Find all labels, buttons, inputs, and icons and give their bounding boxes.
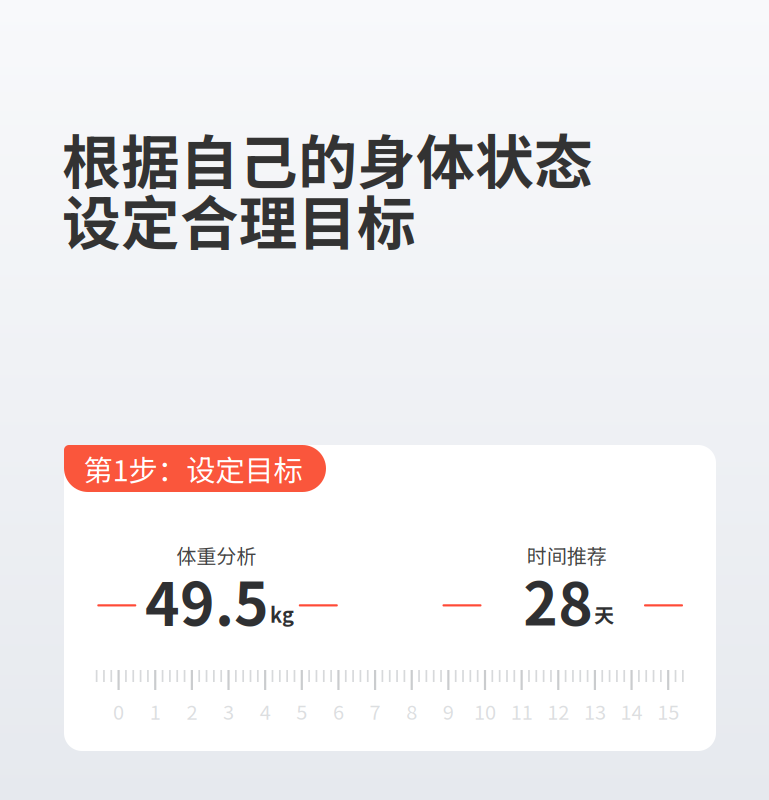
staticText: 8 — [406, 696, 417, 725]
staticText: 5 — [296, 696, 307, 725]
button[interactable]: 体重分析 — [97, 545, 338, 626]
button[interactable]: 第1步：设定目标 — [64, 445, 326, 492]
staticText: 2 — [186, 696, 197, 725]
staticText: 49.5 — [145, 557, 269, 642]
staticText: 7 — [370, 696, 381, 725]
staticText: 设定合理目标 — [62, 177, 416, 262]
staticText: 体重分析 — [177, 540, 257, 569]
staticText: 1 — [150, 696, 161, 725]
staticText: 13 — [584, 696, 606, 725]
staticText: 28 — [523, 557, 593, 642]
staticText: 天 — [594, 599, 614, 628]
staticText: 4 — [260, 696, 271, 725]
staticText: 15 — [657, 696, 679, 725]
staticText: kg — [270, 599, 294, 628]
staticText: 14 — [621, 696, 643, 725]
staticText: 6 — [333, 696, 344, 725]
staticText: 9 — [443, 696, 454, 725]
staticText: 0 — [113, 696, 124, 725]
staticText: 11 — [511, 696, 533, 725]
staticText: 根据自己的身体状态 — [62, 116, 593, 201]
staticText: 3 — [223, 696, 234, 725]
staticText: 12 — [547, 696, 569, 725]
staticText: 时间推荐 — [527, 540, 607, 569]
staticText: 第1步：设定目标 — [83, 447, 302, 490]
staticText: 10 — [474, 696, 496, 725]
button[interactable]: 时间推荐 — [442, 545, 683, 626]
